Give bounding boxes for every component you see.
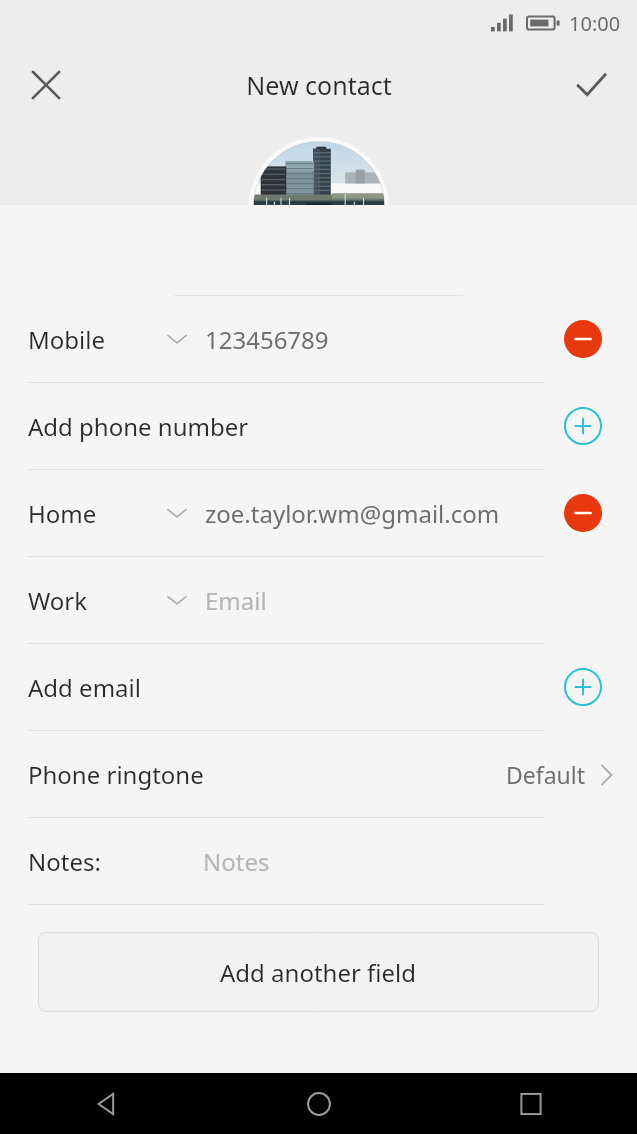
staticText: Default <box>506 759 586 790</box>
button[interactable]: Add phone number <box>0 383 637 469</box>
staticText: Add another field <box>220 956 417 989</box>
button[interactable]: Add field <box>561 404 605 448</box>
button[interactable]: Add email <box>0 644 637 730</box>
button[interactable]: Phone ringtone <box>0 731 637 817</box>
button[interactable]: Back <box>0 1073 213 1134</box>
staticText: Work <box>28 584 88 617</box>
staticText: Notes: <box>28 845 101 878</box>
staticText: 123456789 <box>205 323 329 356</box>
button[interactable]: Home <box>0 470 637 556</box>
staticText: Add phone number <box>28 410 249 443</box>
button[interactable]: Home <box>213 1073 425 1134</box>
button[interactable]: Notes: <box>0 818 637 904</box>
button[interactable]: Remove field <box>561 491 605 535</box>
staticText: Add email <box>28 671 141 704</box>
button[interactable]: Remove field <box>561 317 605 361</box>
staticText: 10:00 <box>569 10 621 37</box>
button[interactable]: Save contact <box>563 57 619 113</box>
button[interactable]: Close <box>18 57 74 113</box>
staticText: Email <box>205 584 267 617</box>
button[interactable]: Contact photo <box>249 137 389 277</box>
staticText: Phone ringtone <box>28 758 204 791</box>
staticText: Notes <box>203 845 270 878</box>
button[interactable]: Recent apps <box>425 1073 637 1134</box>
button[interactable]: Work <box>0 557 637 643</box>
staticText: Home <box>28 497 97 530</box>
staticText: New contact <box>246 68 392 102</box>
button[interactable]: Mobile <box>0 296 637 382</box>
button[interactable]: Add another field <box>38 932 599 1012</box>
staticText: Mobile <box>28 323 105 356</box>
staticText: zoe.taylor.wm@gmail.com <box>205 497 500 530</box>
button[interactable]: Add field <box>561 665 605 709</box>
